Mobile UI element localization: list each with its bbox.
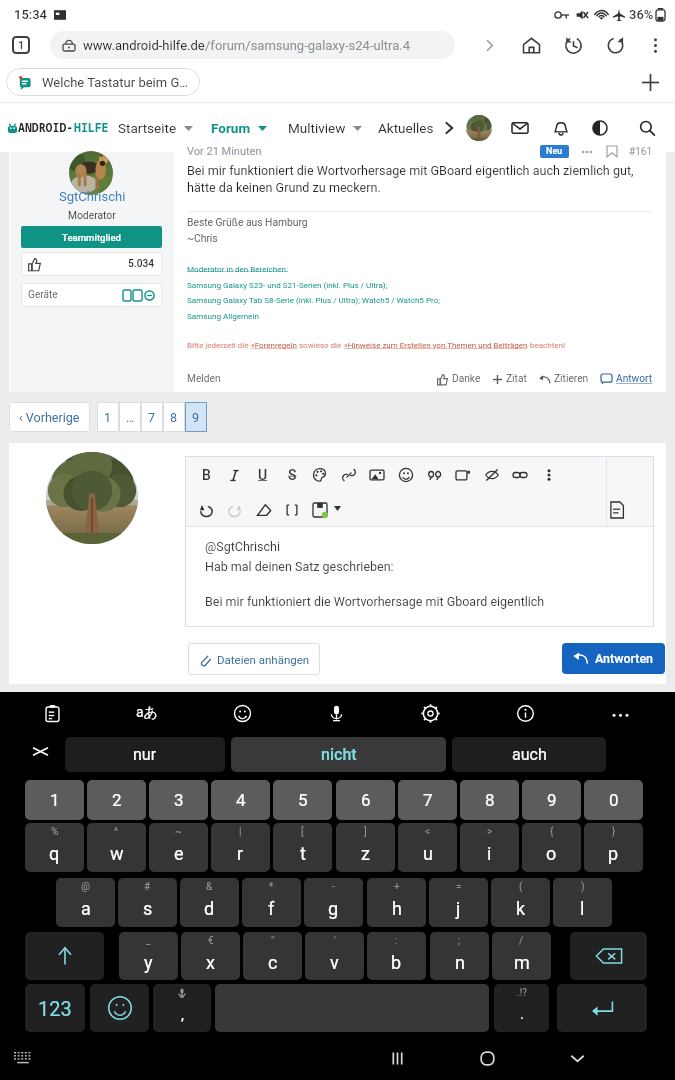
button[interactable]: Startseite	[118, 120, 193, 136]
button[interactable]: Close suggestions	[33, 744, 48, 759]
button[interactable]: 3	[149, 780, 208, 820]
button[interactable]: B	[193, 462, 219, 488]
button[interactable]: Hide keyboard	[14, 1052, 32, 1065]
button[interactable]: {	[522, 823, 581, 872]
button[interactable]: Emoji	[393, 462, 419, 488]
button[interactable]: ]	[336, 823, 395, 872]
button[interactable]: Recents	[382, 1043, 412, 1073]
button[interactable]: back	[570, 932, 647, 980]
button[interactable]: ‹ Vorherige	[9, 402, 90, 432]
button[interactable]: =	[429, 878, 488, 927]
button[interactable]: 8	[163, 402, 185, 432]
button[interactable]: ANDROID-	[7, 120, 109, 136]
button[interactable]: 5.034	[21, 252, 162, 276]
button[interactable]: Spoiler	[479, 462, 505, 488]
button[interactable]: (	[491, 878, 550, 927]
button[interactable]: '	[305, 932, 364, 980]
button[interactable]: Translate	[129, 695, 165, 731]
button[interactable]: &	[180, 878, 239, 927]
button[interactable]: [	[273, 823, 332, 872]
button[interactable]: ~	[149, 823, 208, 872]
button[interactable]: Emoji	[224, 695, 260, 731]
button[interactable]: www.android-hilfe.de	[50, 31, 455, 59]
button[interactable]: ,	[153, 984, 211, 1032]
button[interactable]: >	[460, 823, 519, 872]
button[interactable]: Danke	[437, 373, 481, 385]
button[interactable]: Multiview	[288, 120, 362, 136]
button[interactable]: Media	[450, 462, 476, 488]
button[interactable]: 7	[398, 780, 457, 820]
button[interactable]: Insert image	[364, 462, 390, 488]
button[interactable]: Back	[562, 1043, 592, 1073]
button[interactable]: Undo	[193, 497, 219, 523]
button[interactable]: /	[492, 932, 551, 980]
button[interactable]: shift	[25, 932, 104, 980]
button[interactable]: Notifications	[548, 115, 574, 141]
button[interactable]: 5	[273, 780, 332, 820]
button[interactable]: Melden	[187, 373, 221, 385]
button[interactable]: ;	[430, 932, 489, 980]
button[interactable]: 6	[336, 780, 395, 820]
button[interactable]: Antworten	[562, 643, 665, 674]
button[interactable]: Remove formatting	[250, 497, 276, 523]
button[interactable]: |	[211, 823, 270, 872]
button[interactable]: More	[602, 695, 638, 731]
button[interactable]: …	[119, 402, 141, 432]
button[interactable]: 4	[211, 780, 270, 820]
button[interactable]: Home	[519, 33, 543, 57]
button[interactable]: Quote	[422, 462, 448, 488]
button[interactable]: €	[181, 932, 240, 980]
button[interactable]: Dateien anhängen	[188, 643, 320, 675]
button[interactable]: *	[242, 878, 301, 927]
button[interactable]: Appearance	[587, 115, 613, 141]
button[interactable]: Code	[279, 497, 305, 523]
button[interactable]	[221, 462, 247, 488]
button[interactable]: Zitieren	[539, 373, 589, 385]
button[interactable]: :	[367, 932, 426, 980]
button[interactable]: Avatar SgtChrischi	[69, 151, 113, 195]
button[interactable]: Redo	[221, 497, 247, 523]
button[interactable]: }	[584, 823, 643, 872]
button[interactable]: Teammitglied	[21, 226, 162, 248]
button[interactable]: SgtChrischi	[10, 189, 174, 204]
button[interactable]: Reload	[603, 33, 627, 57]
button[interactable]: Neu	[540, 145, 569, 158]
button[interactable]: U	[250, 462, 276, 488]
button[interactable]: .!?	[494, 984, 549, 1032]
button[interactable]: %	[25, 823, 84, 872]
button[interactable]: 8	[460, 780, 519, 820]
button[interactable]: Unlink	[507, 462, 533, 488]
button[interactable]: More options	[536, 462, 562, 488]
button[interactable]: +	[367, 878, 426, 927]
button[interactable]: Forum	[211, 120, 267, 136]
button[interactable]: auch	[452, 737, 606, 772]
button[interactable]: Aktuelles	[378, 120, 434, 136]
button[interactable]: Antwort	[601, 373, 653, 385]
button[interactable]: Messages	[507, 115, 533, 141]
button[interactable]: Welche Tastatur beim G…	[6, 68, 200, 96]
button[interactable]: Your account	[466, 115, 492, 141]
button[interactable]: Info	[507, 695, 543, 731]
button[interactable]: Your avatar	[46, 452, 138, 544]
button[interactable]: 123	[25, 984, 85, 1032]
button[interactable]: 1	[25, 780, 84, 820]
button[interactable]: Settings	[412, 695, 448, 731]
button[interactable]: _	[119, 932, 178, 980]
button[interactable]: -	[304, 878, 363, 927]
button[interactable]: S	[279, 462, 305, 488]
button[interactable]: Drafts	[307, 497, 333, 523]
button[interactable]: emoji	[90, 984, 149, 1032]
button[interactable]: Text colour	[307, 462, 333, 488]
button[interactable]: Clipboard	[34, 695, 70, 731]
button[interactable]: nur	[65, 737, 225, 772]
button[interactable]: <	[398, 823, 457, 872]
button[interactable]: ^	[87, 823, 146, 872]
button[interactable]: More navigation	[436, 115, 462, 141]
button[interactable]: )	[553, 878, 612, 927]
button[interactable]: Zitat	[493, 373, 527, 385]
button[interactable]: Preview	[604, 497, 630, 523]
button[interactable]: Forward	[477, 33, 501, 57]
button[interactable]: History	[561, 33, 585, 57]
button[interactable]: 7	[141, 402, 163, 432]
button[interactable]: nicht	[231, 737, 446, 772]
